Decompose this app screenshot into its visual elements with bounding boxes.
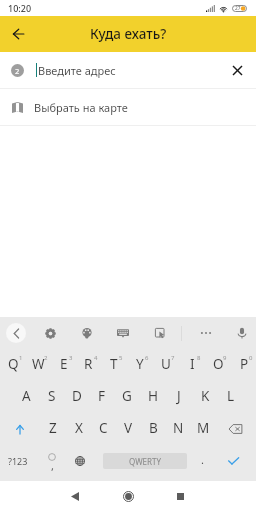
staticText: C [99, 419, 108, 437]
staticText: 2 [44, 354, 48, 362]
button[interactable]: U [152, 349, 178, 381]
button[interactable]: Collapse toolbar [6, 323, 26, 343]
staticText: L [227, 387, 235, 405]
staticText: O [213, 355, 224, 373]
button[interactable]: Done [221, 445, 245, 477]
staticText: 4 [94, 354, 98, 362]
staticText: Y [136, 355, 144, 373]
staticText: F [98, 387, 106, 405]
button[interactable]: Clear [223, 56, 251, 84]
staticText: 9 [223, 354, 227, 362]
button[interactable]: M [191, 413, 216, 445]
staticText: H [148, 387, 159, 405]
button[interactable]: I [178, 349, 204, 381]
staticText: S [48, 387, 56, 405]
button[interactable]: J [165, 381, 191, 413]
button[interactable]: O [204, 349, 230, 381]
button[interactable]: K [191, 381, 217, 413]
button[interactable]: , [40, 445, 64, 477]
staticText: 1 [19, 354, 23, 362]
staticText: 10:20 [8, 2, 32, 14]
button[interactable]: Settings [39, 322, 61, 344]
staticText: . [201, 452, 204, 467]
button[interactable]: Back [62, 484, 87, 509]
button[interactable]: H [139, 381, 165, 413]
staticText: 0 [249, 354, 253, 362]
staticText: G [122, 387, 132, 405]
staticText: B [149, 419, 158, 437]
staticText: QWERTY [129, 456, 162, 467]
staticText: I [190, 355, 195, 373]
button[interactable]: X [66, 413, 91, 445]
button[interactable]: Shift [0, 413, 40, 445]
staticText: T [110, 355, 118, 373]
button[interactable]: QWERTY [103, 453, 187, 469]
button[interactable]: V [116, 413, 141, 445]
button[interactable]: C [91, 413, 116, 445]
staticText: 2 [15, 66, 20, 76]
button[interactable]: G [113, 381, 139, 413]
button[interactable]: ?123 [3, 445, 33, 477]
button[interactable]: Recents [168, 484, 193, 509]
staticText: 7 [171, 354, 175, 362]
staticText: R [84, 355, 93, 373]
staticText: N [173, 419, 184, 437]
staticText: ?123 [8, 455, 28, 467]
button[interactable]: B [141, 413, 166, 445]
staticText: Выбрать на карте [34, 100, 128, 115]
button[interactable]: P [230, 349, 256, 381]
button[interactable]: 2 [0, 52, 256, 88]
button[interactable]: Home [116, 484, 141, 509]
staticText: 27 [235, 5, 241, 12]
button[interactable]: Выбрать на карте [0, 89, 256, 125]
button[interactable]: Q [0, 349, 25, 381]
button[interactable]: Voice input [231, 322, 253, 344]
button[interactable]: . [190, 445, 214, 477]
button[interactable]: R [75, 349, 100, 381]
staticText: V [124, 419, 133, 437]
button[interactable]: Stickers [149, 322, 171, 344]
staticText: 6 [145, 354, 149, 362]
button[interactable]: L [217, 381, 243, 413]
button[interactable]: A [13, 381, 38, 413]
staticText: K [201, 387, 210, 405]
staticText: , [51, 458, 54, 473]
button[interactable]: T [100, 349, 126, 381]
button[interactable]: Keyboard layout [112, 322, 134, 344]
button[interactable]: Change language [68, 445, 92, 477]
staticText: 3 [69, 354, 73, 362]
button[interactable]: Back [0, 16, 36, 52]
button[interactable]: Z [40, 413, 66, 445]
staticText: W [32, 355, 45, 373]
staticText: Введите адрес [38, 63, 116, 78]
button[interactable]: N [166, 413, 191, 445]
staticText: M [197, 419, 210, 437]
staticText: Куда ехать? [90, 25, 167, 43]
staticText: Z [49, 419, 57, 437]
staticText: P [240, 355, 249, 373]
staticText: A [22, 387, 31, 405]
staticText: E [60, 355, 68, 373]
button[interactable]: W [25, 349, 50, 381]
button[interactable]: Y [126, 349, 152, 381]
button[interactable]: E [50, 349, 75, 381]
staticText: 8 [197, 354, 201, 362]
staticText: Q [8, 355, 19, 373]
staticText: 5 [119, 354, 123, 362]
staticText: J [177, 387, 181, 405]
button[interactable]: Backspace [216, 413, 256, 445]
button[interactable]: F [88, 381, 113, 413]
staticText: X [75, 419, 83, 437]
staticText: U [161, 355, 171, 373]
button[interactable]: S [38, 381, 63, 413]
staticText: D [72, 387, 82, 405]
button[interactable]: Themes [76, 322, 98, 344]
button[interactable]: More options [195, 322, 217, 344]
button[interactable]: D [63, 381, 88, 413]
